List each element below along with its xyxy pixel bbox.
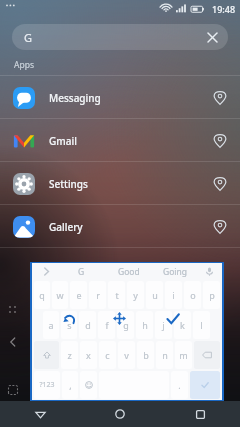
button[interactable]: z	[61, 341, 78, 369]
staticText: ,	[69, 379, 72, 391]
staticText: j	[162, 319, 165, 331]
button[interactable]: j	[155, 311, 172, 339]
button[interactable]: G	[12, 24, 228, 50]
staticText: k	[180, 319, 185, 331]
staticText: i	[172, 289, 175, 301]
button[interactable]: Enter	[190, 371, 220, 399]
button[interactable]: w	[52, 281, 68, 309]
button[interactable]: c	[99, 341, 116, 369]
staticText: q	[39, 289, 45, 301]
button[interactable]: x	[80, 341, 97, 369]
button[interactable]: Clear search	[202, 27, 222, 47]
staticText: g	[123, 319, 129, 331]
staticText: m	[179, 349, 188, 361]
staticText: c	[105, 349, 110, 361]
button[interactable]: q	[34, 281, 50, 309]
staticText: w	[56, 289, 64, 301]
button[interactable]: Move keyboard	[111, 310, 128, 327]
staticText: a	[48, 319, 54, 331]
button[interactable]: r	[89, 281, 106, 309]
staticText: G	[78, 266, 85, 278]
button[interactable]: More suggestions	[35, 263, 57, 280]
button[interactable]: i	[165, 281, 182, 309]
button[interactable]: a	[43, 311, 59, 339]
button[interactable]: Pin Settings	[213, 177, 227, 191]
button[interactable]: b	[137, 341, 154, 369]
staticText: t	[115, 289, 119, 301]
staticText: y	[133, 289, 138, 301]
button[interactable]: Screenshot tool	[6, 383, 20, 397]
staticText: z	[67, 349, 72, 361]
button[interactable]: v	[118, 341, 135, 369]
button[interactable]: Recent apps	[160, 401, 240, 427]
button[interactable]: Collapse	[6, 335, 20, 349]
staticText: 19:48	[212, 3, 236, 15]
button[interactable]: G	[57, 263, 105, 280]
button[interactable]: Gmail	[0, 119, 240, 162]
button[interactable]: s	[61, 311, 77, 339]
staticText: v	[124, 349, 129, 361]
button[interactable]: Drag handle	[6, 303, 20, 317]
button[interactable]: Voice input	[199, 263, 219, 280]
staticText: d	[85, 319, 91, 331]
button[interactable]: Good	[105, 263, 152, 280]
button[interactable]: Confirm size	[164, 310, 181, 327]
staticText: f	[105, 319, 109, 331]
staticText: Messaging	[49, 91, 101, 105]
button[interactable]: Back	[0, 401, 80, 427]
button[interactable]: Going	[152, 263, 199, 280]
staticText: Good	[118, 266, 140, 278]
staticText: s	[67, 319, 72, 331]
button[interactable]: Pin Gmail	[213, 134, 227, 148]
button[interactable]: Settings	[0, 162, 240, 205]
staticText: G	[24, 30, 33, 45]
staticText: p	[209, 289, 215, 301]
staticText: e	[76, 289, 82, 301]
button[interactable]: ?123	[34, 371, 60, 399]
button[interactable]: g	[117, 311, 134, 339]
button[interactable]: Emoji	[80, 371, 97, 399]
button[interactable]: Pin Gallery	[213, 220, 227, 234]
button[interactable]: Undo	[60, 310, 77, 327]
staticText: Apps	[14, 59, 34, 71]
button[interactable]: Backspace	[194, 341, 220, 369]
staticText: u	[152, 289, 158, 301]
button[interactable]: Shift	[34, 341, 59, 369]
staticText: l	[200, 319, 203, 331]
staticText: .	[178, 379, 181, 391]
button[interactable]: h	[136, 311, 153, 339]
button[interactable]: p	[203, 281, 220, 309]
staticText: Gallery	[49, 220, 83, 234]
button[interactable]: y	[127, 281, 144, 309]
staticText: r	[96, 289, 100, 301]
button[interactable]: ,	[62, 371, 78, 399]
button[interactable]: l	[193, 311, 210, 339]
button[interactable]: e	[70, 281, 87, 309]
button[interactable]: m	[175, 341, 192, 369]
staticText: n	[162, 349, 168, 361]
staticText: Settings	[49, 177, 88, 191]
staticText: h	[142, 319, 148, 331]
staticText: ?123	[39, 380, 55, 390]
button[interactable]: o	[184, 281, 201, 309]
staticText: x	[86, 349, 91, 361]
button[interactable]: k	[174, 311, 191, 339]
button[interactable]: Messaging	[0, 76, 240, 119]
staticText: b	[143, 349, 149, 361]
button[interactable]: n	[156, 341, 173, 369]
button[interactable]: Pin Messaging	[213, 91, 227, 105]
button[interactable]: t	[108, 281, 125, 309]
staticText: Gmail	[49, 134, 77, 148]
button[interactable]: Home	[80, 401, 160, 427]
staticText: Going	[163, 266, 188, 278]
button[interactable]: Gallery	[0, 205, 240, 248]
button[interactable]: f	[98, 311, 115, 339]
button[interactable]: d	[79, 311, 96, 339]
button[interactable]: u	[146, 281, 163, 309]
staticText: o	[190, 289, 196, 301]
